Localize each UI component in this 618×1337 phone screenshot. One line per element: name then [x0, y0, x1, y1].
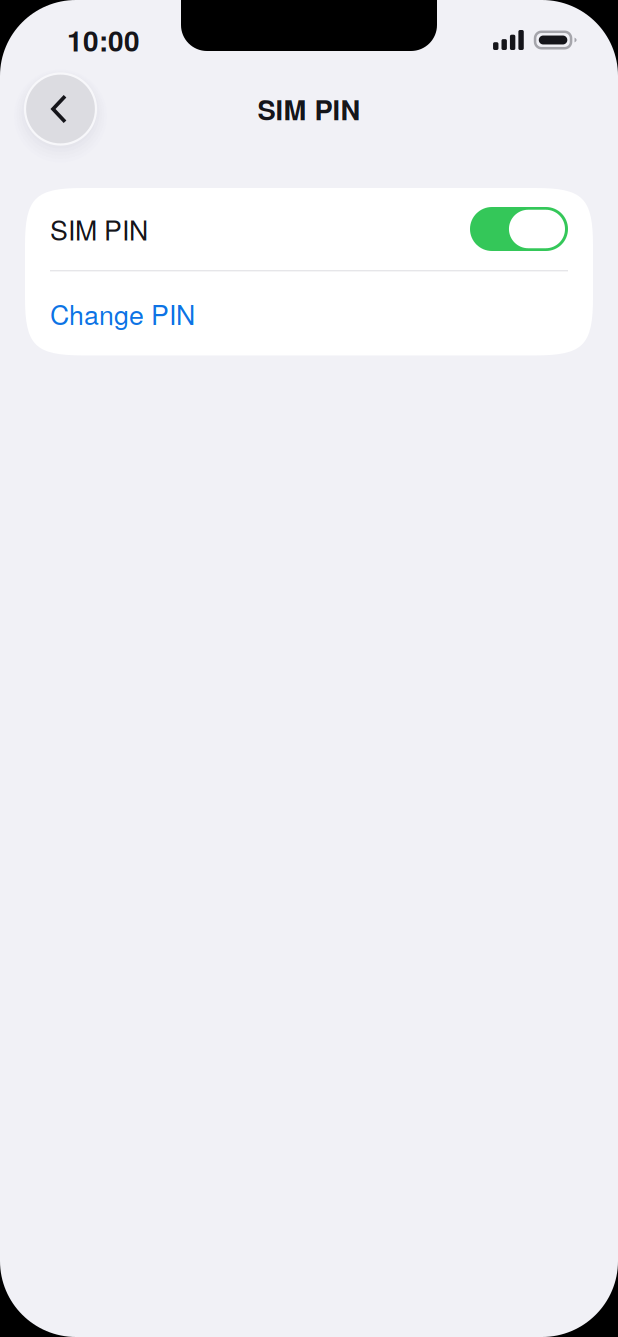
button[interactable]: SIM PIN	[25, 188, 593, 270]
staticText: SIM PIN	[50, 210, 148, 248]
staticText: Change PIN	[50, 294, 195, 332]
staticText: SIM PIN	[257, 89, 360, 128]
button[interactable]: Change PIN	[25, 271, 593, 355]
button[interactable]: Back	[25, 73, 96, 144]
staticText: 10:00	[67, 20, 140, 60]
